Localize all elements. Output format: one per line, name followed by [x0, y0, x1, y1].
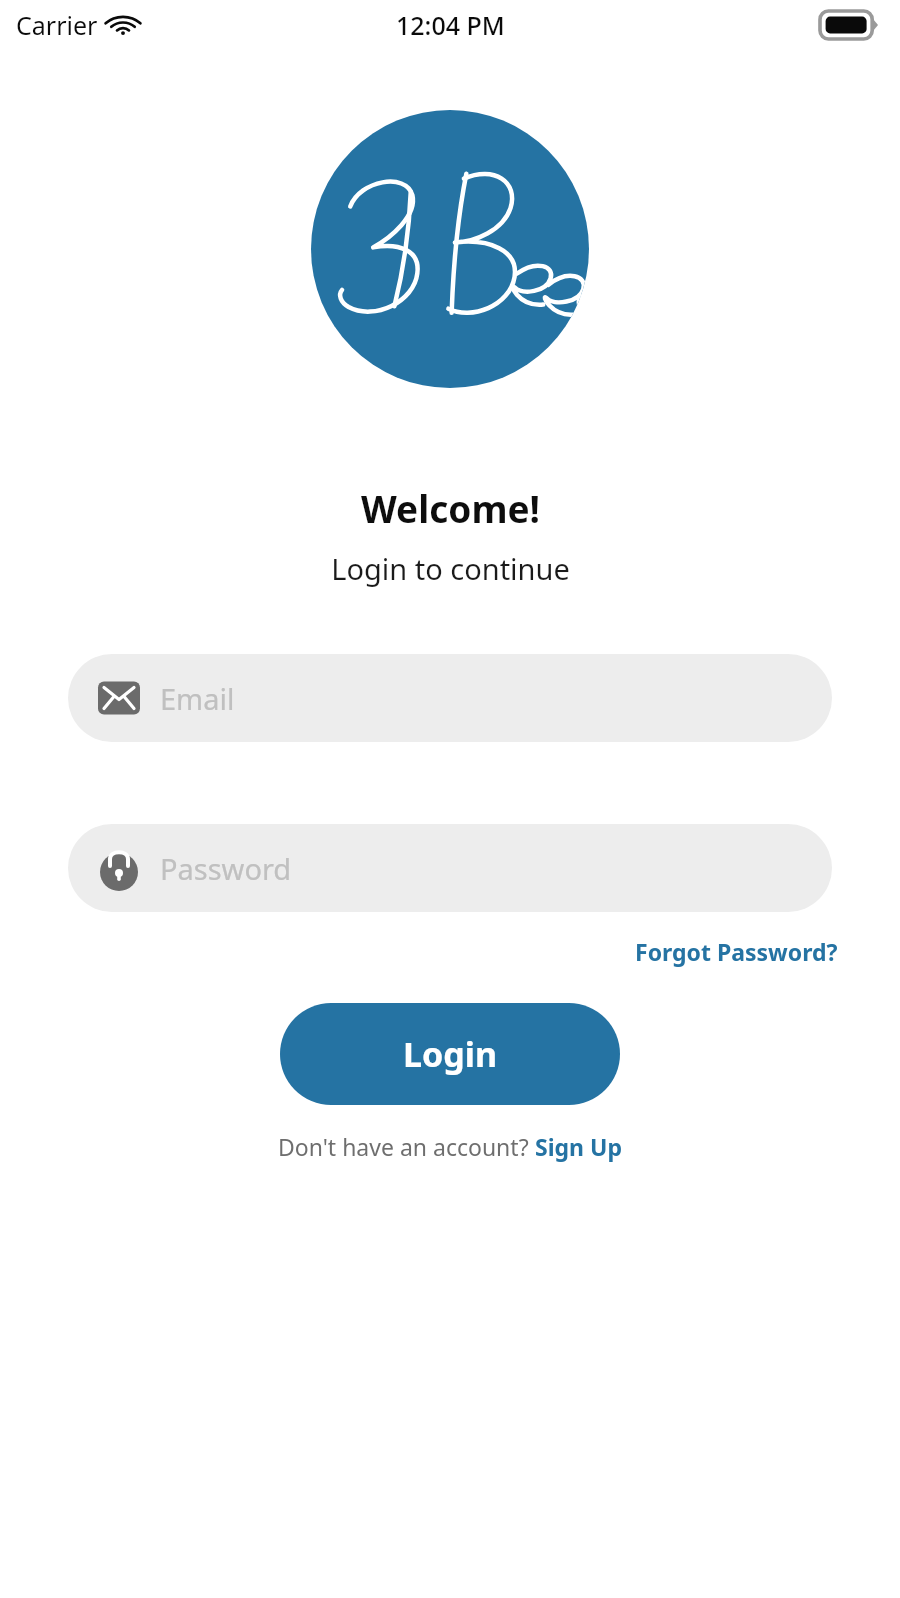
staticText: Carrier	[16, 8, 98, 42]
button[interactable]: Forgot Password?	[631, 930, 842, 973]
button[interactable]: Sign Up	[535, 1131, 622, 1162]
button[interactable]: Password	[68, 824, 832, 912]
button[interactable]: Email	[68, 654, 832, 742]
staticText: Don't have an account?	[278, 1131, 535, 1162]
staticText: Welcome!	[361, 483, 540, 533]
staticText: Email	[160, 679, 235, 718]
staticText: Forgot Password?	[635, 936, 838, 967]
staticText: 12:04 PM	[396, 8, 505, 42]
button[interactable]: Login	[280, 1003, 620, 1105]
staticText: Sign Up	[535, 1131, 622, 1162]
staticText: Password	[160, 849, 292, 888]
staticText: Login to continue	[331, 549, 570, 588]
staticText: Login	[403, 1031, 498, 1077]
